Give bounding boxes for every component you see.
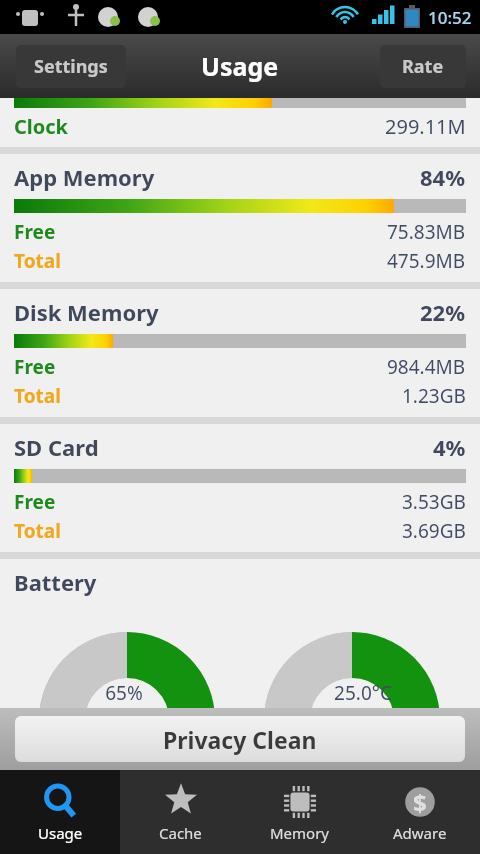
staticText: 3.53GB <box>402 489 466 515</box>
button[interactable]: Rate <box>380 45 466 88</box>
staticText: 10:52 <box>428 6 472 29</box>
staticText: Memory <box>270 823 330 843</box>
staticText: 4% <box>433 432 466 462</box>
staticText: Settings <box>34 54 108 79</box>
staticText: Battery <box>14 567 97 597</box>
button[interactable]: Battery <box>0 559 480 708</box>
staticText: Total <box>14 518 61 544</box>
button[interactable]: Cache <box>120 770 240 854</box>
staticText: 65% <box>105 680 143 706</box>
staticText: Adware <box>393 823 447 843</box>
button[interactable]: Privacy Clean <box>15 716 465 762</box>
staticText: App Memory <box>14 162 155 192</box>
staticText: Free <box>14 489 56 515</box>
button[interactable]: App Memory <box>0 154 480 282</box>
button[interactable]: Adware <box>360 770 480 854</box>
button[interactable]: Usage <box>0 770 120 854</box>
staticText: 299.11M <box>385 113 466 140</box>
staticText: 84% <box>420 162 466 192</box>
button[interactable]: Settings <box>16 45 126 88</box>
staticText: 22% <box>420 297 466 327</box>
staticText: Usage <box>201 49 279 83</box>
staticText: Privacy Clean <box>163 724 317 755</box>
staticText: Free <box>14 219 56 245</box>
button[interactable]: SD Card <box>0 424 480 552</box>
staticText: Clock <box>14 113 69 140</box>
staticText: Cache <box>159 823 202 843</box>
staticText: 3.69GB <box>402 518 466 544</box>
staticText: Usage <box>38 823 83 843</box>
staticText: 75.83MB <box>387 219 466 245</box>
staticText: Total <box>14 248 61 274</box>
button[interactable]: Memory <box>240 770 360 854</box>
button[interactable]: Disk Memory <box>0 289 480 417</box>
staticText: 25.0°C <box>334 680 392 706</box>
staticText: 1.23GB <box>402 383 466 409</box>
button[interactable]: Clock <box>0 98 480 147</box>
staticText: 475.9MB <box>387 248 466 274</box>
staticText: Disk Memory <box>14 297 159 327</box>
staticText: 984.4MB <box>387 354 466 380</box>
staticText: Free <box>14 354 56 380</box>
staticText: Total <box>14 383 61 409</box>
staticText: SD Card <box>14 432 99 462</box>
staticText: $ <box>413 786 427 819</box>
staticText: Rate <box>402 54 444 79</box>
